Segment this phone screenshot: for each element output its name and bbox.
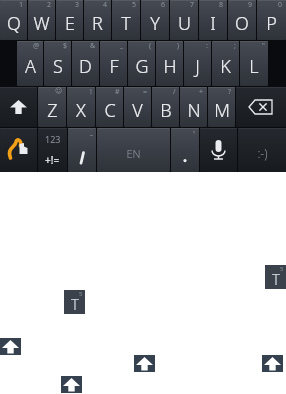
button[interactable]: 123 bbox=[38, 128, 67, 172]
button[interactable]: 8 bbox=[199, 0, 227, 40]
staticText: M bbox=[214, 98, 230, 123]
staticText: Z bbox=[47, 98, 58, 123]
staticText: Q bbox=[7, 11, 21, 36]
button[interactable]: = bbox=[124, 87, 151, 127]
staticText: ☺ bbox=[55, 87, 63, 95]
staticText: I bbox=[210, 11, 216, 36]
staticText: J bbox=[195, 54, 200, 79]
staticText: 8 bbox=[219, 0, 224, 10]
button[interactable]: Backspace bbox=[236, 87, 286, 127]
button[interactable]: ) bbox=[156, 41, 183, 86]
button[interactable]: ? bbox=[208, 87, 235, 127]
staticText: - bbox=[90, 128, 93, 140]
button[interactable]: @ bbox=[17, 41, 43, 86]
staticText: D bbox=[79, 54, 92, 79]
button[interactable]: 7 bbox=[170, 0, 198, 40]
staticText: T bbox=[272, 269, 280, 289]
button[interactable]: Shift bbox=[0, 87, 37, 127]
staticText: 2 bbox=[47, 0, 52, 10]
staticText: C bbox=[104, 98, 116, 123]
staticText: O bbox=[235, 11, 249, 36]
staticText: ! bbox=[90, 87, 92, 97]
staticText: S bbox=[53, 54, 63, 79]
button[interactable]: Voice input bbox=[200, 128, 237, 172]
staticText: + bbox=[199, 87, 204, 97]
staticText: ; bbox=[234, 41, 236, 51]
button[interactable]: 6 bbox=[141, 0, 169, 40]
staticText: 1 bbox=[19, 0, 24, 10]
staticText: X bbox=[76, 98, 86, 123]
staticText: 4 bbox=[103, 0, 108, 10]
staticText: 5 bbox=[132, 0, 137, 10]
staticText: N bbox=[187, 98, 201, 123]
button[interactable]: Handwriting bbox=[0, 128, 37, 172]
staticText: $ bbox=[63, 41, 68, 51]
staticText: B bbox=[160, 98, 172, 123]
staticText: +!= bbox=[45, 153, 60, 167]
staticText: " bbox=[262, 41, 265, 51]
button[interactable]: ☺ bbox=[38, 87, 66, 127]
staticText: E bbox=[65, 11, 75, 36]
staticText: F bbox=[109, 54, 119, 79]
staticText: 3 bbox=[75, 0, 80, 10]
staticText: A bbox=[25, 54, 36, 79]
button[interactable]: Emoji bbox=[238, 128, 286, 172]
button[interactable]: $ bbox=[44, 41, 71, 86]
staticText: : bbox=[206, 41, 208, 51]
staticText: 0 bbox=[278, 0, 283, 10]
button[interactable]: ( bbox=[128, 41, 155, 86]
staticText: G bbox=[135, 54, 149, 79]
staticText: W bbox=[33, 11, 50, 36]
staticText: ' bbox=[193, 128, 196, 140]
staticText: 6 bbox=[161, 0, 166, 10]
staticText: 9 bbox=[248, 0, 253, 10]
staticText: @ bbox=[33, 41, 40, 51]
staticText: T bbox=[121, 11, 131, 36]
staticText: :-) bbox=[257, 145, 268, 161]
staticText: P bbox=[266, 11, 277, 36]
staticText: L bbox=[249, 54, 259, 79]
button[interactable]: 9 bbox=[228, 0, 256, 40]
button[interactable]: # bbox=[96, 87, 123, 127]
button[interactable]: 1 bbox=[0, 0, 27, 40]
button[interactable]: Period bbox=[171, 128, 199, 172]
staticText: / bbox=[173, 87, 176, 97]
staticText: 5 bbox=[280, 265, 284, 273]
button[interactable]: : bbox=[184, 41, 211, 86]
staticText: ) bbox=[177, 41, 180, 51]
staticText: # bbox=[115, 87, 120, 97]
staticText: & bbox=[90, 41, 96, 51]
staticText: T bbox=[71, 294, 79, 314]
button[interactable]: " bbox=[240, 41, 268, 86]
button[interactable]: 3 bbox=[56, 0, 83, 40]
button[interactable]: + bbox=[180, 87, 207, 127]
staticText: Y bbox=[150, 11, 160, 36]
staticText: 7 bbox=[190, 0, 195, 10]
staticText: _ bbox=[120, 41, 124, 51]
button[interactable]: Space bbox=[97, 128, 170, 172]
button[interactable]: 4 bbox=[84, 0, 111, 40]
button[interactable]: / bbox=[152, 87, 179, 127]
staticText: ? bbox=[228, 87, 232, 97]
button[interactable]: 2 bbox=[28, 0, 55, 40]
button[interactable]: 0 bbox=[257, 0, 286, 40]
staticText: R bbox=[92, 11, 103, 36]
staticText: 123 bbox=[45, 133, 61, 145]
button[interactable]: ! bbox=[67, 87, 95, 127]
staticText: 5 bbox=[79, 290, 83, 298]
button[interactable]: Comma bbox=[68, 128, 96, 172]
staticText: H bbox=[163, 54, 177, 79]
button[interactable]: & bbox=[72, 41, 99, 86]
staticText: K bbox=[220, 54, 231, 79]
staticText: U bbox=[178, 11, 191, 36]
staticText: = bbox=[143, 87, 148, 97]
button[interactable]: 5 bbox=[112, 0, 140, 40]
staticText: EN bbox=[126, 146, 141, 161]
button[interactable]: _ bbox=[100, 41, 127, 86]
staticText: V bbox=[132, 98, 143, 123]
button[interactable]: ; bbox=[212, 41, 239, 86]
staticText: ( bbox=[149, 41, 152, 51]
